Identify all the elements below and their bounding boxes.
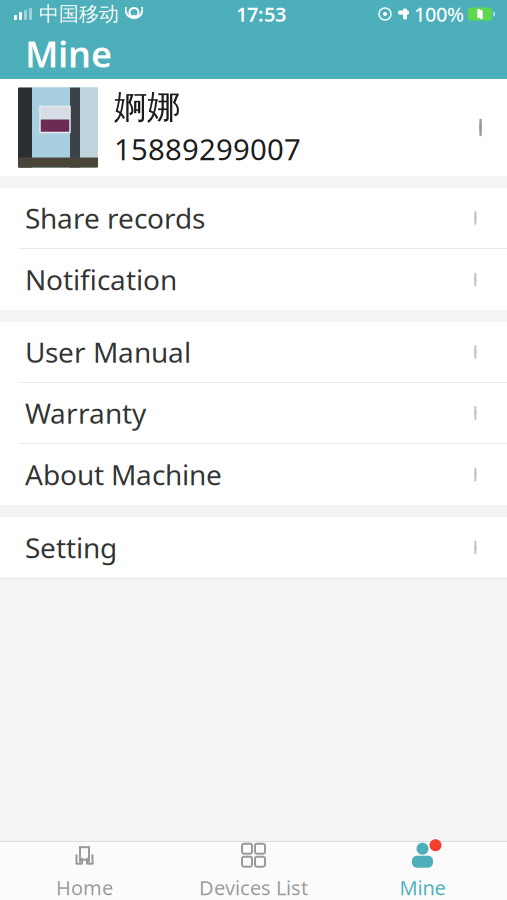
staticText: 婀娜 — [114, 87, 180, 127]
staticText: 15889299007 — [114, 129, 301, 168]
button[interactable]: 婀娜 — [0, 79, 507, 176]
staticText: Home — [56, 874, 113, 900]
staticText: Mine — [25, 30, 112, 77]
button[interactable]: About Machine — [0, 444, 507, 505]
button[interactable]: Devices List — [169, 842, 338, 900]
button[interactable]: Mine — [338, 842, 507, 900]
button[interactable]: Warranty — [0, 383, 507, 444]
staticText: Devices List — [199, 874, 308, 900]
staticText: Warranty — [25, 394, 146, 432]
button[interactable]: Share records — [0, 188, 507, 249]
button[interactable]: User Manual — [0, 322, 507, 383]
staticText: Setting — [25, 529, 117, 566]
staticText: Mine — [399, 874, 445, 900]
staticText: User Manual — [25, 333, 191, 371]
staticText: 17:53 — [236, 1, 286, 27]
staticText: 中国移动 — [39, 2, 119, 26]
staticText: 100% — [414, 1, 464, 27]
button[interactable]: Setting — [0, 517, 507, 578]
button[interactable]: Home — [0, 842, 169, 900]
button[interactable]: Notification — [0, 249, 507, 310]
staticText: About Machine — [25, 456, 222, 493]
staticText: Notification — [25, 261, 177, 298]
staticText: Share records — [25, 199, 205, 237]
